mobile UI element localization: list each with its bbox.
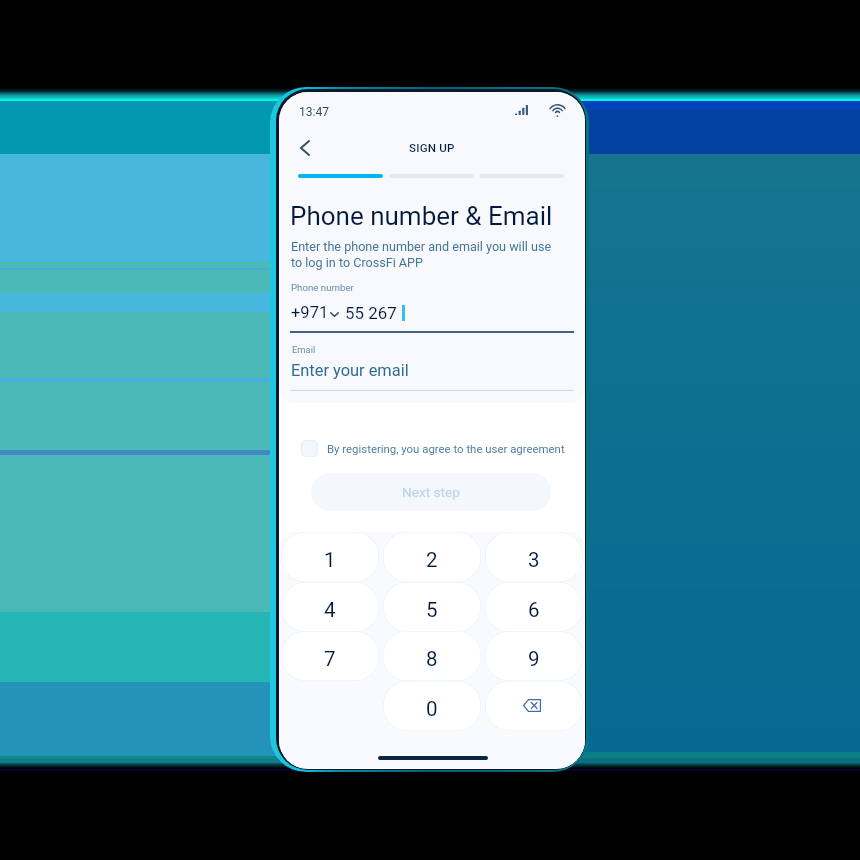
staticText: 55 267: [345, 303, 397, 323]
button[interactable]: 1: [281, 532, 379, 582]
button[interactable]: 9: [485, 631, 583, 681]
staticText: 2: [426, 548, 438, 572]
button[interactable]: By registering, you agree to the user ag…: [327, 442, 565, 455]
staticText: 3: [528, 548, 540, 572]
staticText: 8: [426, 647, 438, 671]
staticText: Enter the phone number and email you wil…: [291, 239, 583, 270]
staticText: Phone number & Email: [290, 201, 553, 231]
staticText: Enter your email: [291, 361, 409, 380]
staticText: 9: [528, 647, 540, 671]
button[interactable]: Backspace: [485, 681, 583, 731]
staticText: Next step: [402, 484, 460, 500]
staticText: 5: [426, 598, 438, 622]
staticText: 13:47: [299, 105, 330, 119]
staticText: Phone number: [291, 282, 354, 293]
button[interactable]: 6: [485, 582, 583, 632]
staticText: +971: [291, 303, 329, 322]
button[interactable]: 8: [383, 631, 481, 681]
button[interactable]: 7: [281, 631, 379, 681]
staticText: 0: [426, 697, 438, 721]
button[interactable]: 5: [383, 582, 481, 632]
staticText: 7: [324, 647, 336, 671]
button[interactable]: 4: [281, 582, 379, 632]
button[interactable]: 0: [383, 681, 481, 731]
button[interactable]: 3: [485, 532, 583, 582]
staticText: 4: [324, 598, 336, 622]
button[interactable]: 2: [383, 532, 481, 582]
staticText: 1: [324, 548, 336, 572]
button[interactable]: Agree to user agreement: [301, 440, 318, 457]
staticText: Email: [292, 344, 316, 355]
button[interactable]: Back: [286, 129, 324, 167]
staticText: SIGN UP: [409, 141, 455, 155]
staticText: 6: [528, 598, 540, 622]
button[interactable]: Next step: [311, 473, 551, 511]
